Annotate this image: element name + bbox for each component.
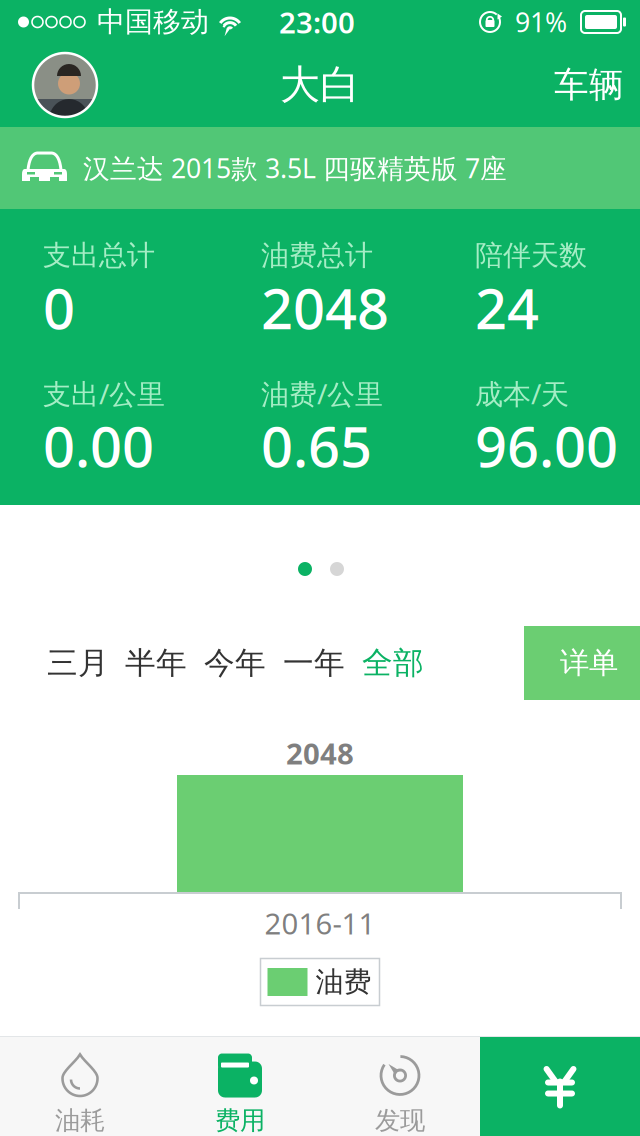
button[interactable]: 一年 (269, 626, 359, 700)
button[interactable]: 汉兰达 2015款 3.5L 四驱精英版 7座 (0, 127, 640, 209)
staticText: 油耗 (55, 1105, 105, 1136)
staticText: 91% (515, 4, 567, 40)
staticText: 全部 (362, 644, 424, 682)
button[interactable]: 三月 (33, 626, 123, 700)
staticText: 中国移动 (97, 5, 209, 39)
staticText: 支出总计 (43, 238, 155, 273)
staticText: 0.65 (261, 408, 372, 483)
staticText: 支出/公里 (43, 375, 165, 412)
staticText: 半年 (125, 644, 187, 682)
staticText: 96.00 (475, 408, 618, 483)
button[interactable]: 全部 (348, 626, 438, 700)
button[interactable]: 油耗 (0, 1037, 160, 1136)
staticText: 汉兰达 2015款 3.5L 四驱精英版 7座 (83, 150, 507, 186)
button[interactable]: 今年 (190, 626, 280, 700)
staticText: 今年 (204, 644, 266, 682)
button[interactable]: 详单 (524, 626, 640, 700)
staticText: 油费总计 (261, 238, 373, 273)
button[interactable]: Page 2 (322, 554, 352, 584)
staticText: 车辆 (554, 64, 624, 106)
staticText: 油费/公里 (261, 375, 383, 412)
button[interactable]: 车辆 (544, 60, 634, 110)
button[interactable]: Profile (30, 50, 100, 120)
button[interactable]: 半年 (111, 626, 201, 700)
staticText: 详单 (560, 645, 618, 681)
staticText: 大白 (280, 60, 360, 109)
staticText: 成本/天 (475, 375, 569, 412)
staticText: 2048 (286, 733, 354, 772)
button[interactable]: Page 1 (290, 554, 320, 584)
staticText: 油费 (315, 965, 371, 999)
button[interactable]: 费用 (160, 1037, 320, 1136)
button[interactable]: 发现 (320, 1037, 480, 1136)
staticText: 0.00 (43, 408, 154, 483)
staticText: 发现 (375, 1105, 425, 1136)
button[interactable]: Add expense (480, 1037, 640, 1136)
staticText: 一年 (283, 644, 345, 682)
staticText: 费用 (215, 1105, 265, 1136)
staticText: 三月 (47, 644, 109, 682)
staticText: 0 (43, 270, 75, 345)
staticText: 2048 (261, 270, 389, 345)
staticText: 24 (475, 270, 539, 345)
staticText: 23:00 (279, 2, 355, 41)
staticText: 2016-11 (264, 903, 375, 942)
staticText: 陪伴天数 (475, 238, 587, 273)
